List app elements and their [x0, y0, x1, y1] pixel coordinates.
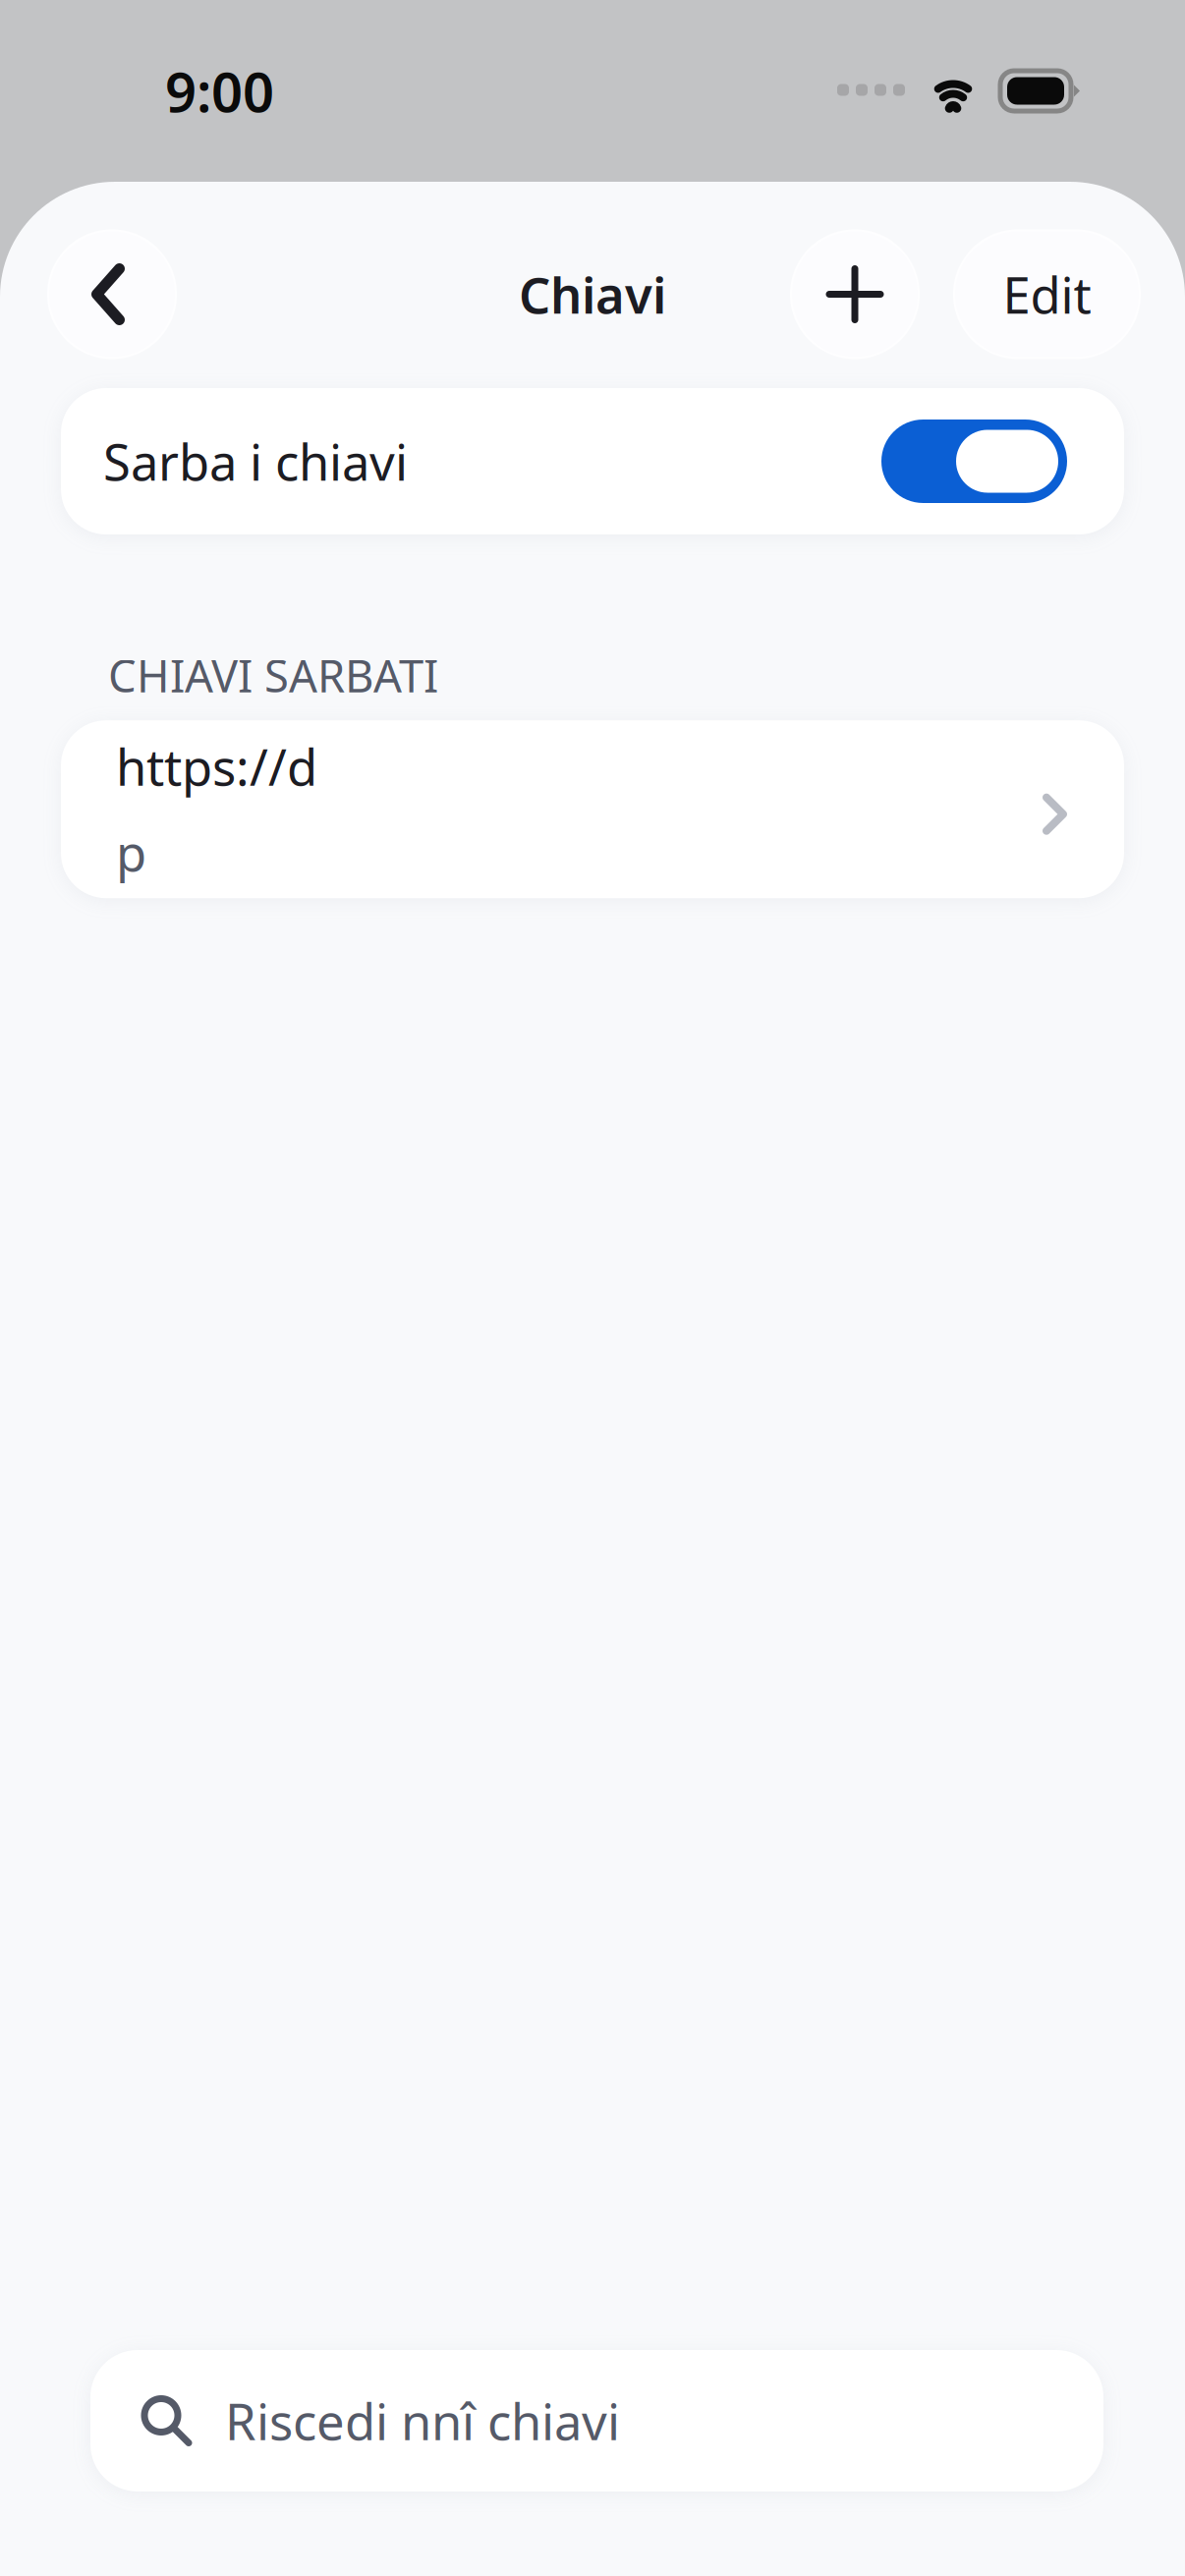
staticText: Chiavi [519, 261, 666, 327]
button[interactable]: Riscedi nnî chiavi [90, 2350, 1103, 2492]
button[interactable]: Edit [954, 230, 1140, 358]
staticText: https://d [116, 733, 317, 799]
staticText: 9:00 [165, 54, 274, 127]
staticText: Riscedi nnî chiavi [225, 2388, 620, 2454]
staticText: Sarba i chiavi [103, 428, 408, 494]
staticText: p [116, 819, 146, 885]
button[interactable]: Add [789, 230, 921, 358]
button[interactable]: https://d [61, 720, 1124, 898]
button[interactable]: Back [48, 230, 176, 358]
staticText: Edit [1003, 261, 1091, 327]
staticText: CHIAVI SARBATI [108, 645, 438, 705]
button[interactable]: Sarba i chiavi [61, 388, 1124, 534]
